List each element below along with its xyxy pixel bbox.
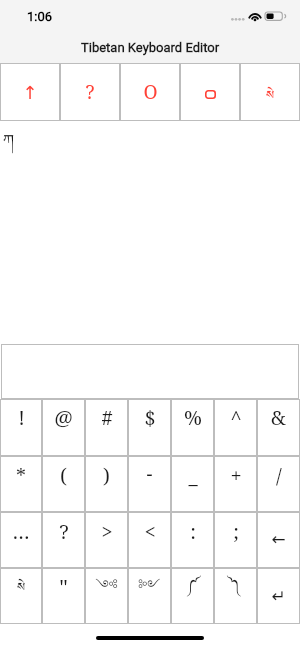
button[interactable]: / xyxy=(257,456,300,512)
button[interactable]: ↵ xyxy=(257,568,300,624)
button[interactable]: ) xyxy=(85,456,128,512)
button[interactable]: < xyxy=(128,512,171,568)
staticText: " xyxy=(59,565,68,621)
button[interactable]: : xyxy=(171,512,214,568)
staticText: ༻ xyxy=(138,569,161,608)
button[interactable]: ; xyxy=(214,512,257,568)
staticText: $ xyxy=(144,396,156,452)
staticText: * xyxy=(16,454,26,510)
staticText: ↑ xyxy=(22,82,38,103)
button[interactable]: ༺ xyxy=(85,568,128,624)
button[interactable]: # xyxy=(85,399,128,456)
button[interactable]: ༽ xyxy=(214,568,257,624)
button[interactable]: Space xyxy=(180,63,240,121)
button[interactable]: " xyxy=(42,568,85,624)
staticText: ? xyxy=(59,510,69,566)
staticText: ) xyxy=(103,454,110,510)
button[interactable]: - xyxy=(128,456,171,512)
staticText: / xyxy=(276,454,282,510)
staticText: ; xyxy=(233,510,239,566)
button[interactable]: Tibetan letter xyxy=(240,63,300,121)
button[interactable]: … xyxy=(0,512,42,568)
button[interactable]: ( xyxy=(42,456,85,512)
staticText: > xyxy=(101,510,113,566)
button[interactable]: @ xyxy=(42,399,85,456)
staticText: ? xyxy=(85,71,95,124)
staticText: ← xyxy=(271,529,286,549)
button[interactable]: ? xyxy=(42,512,85,568)
button[interactable]: * xyxy=(0,456,42,512)
staticText: ↵ xyxy=(271,586,286,606)
staticText: @ xyxy=(54,396,73,452)
staticText: ༼ xyxy=(186,575,199,601)
staticText: + xyxy=(230,454,242,510)
staticText: Tibetan Keyboard Editor xyxy=(81,40,220,55)
button[interactable]: Shift xyxy=(0,63,60,121)
staticText: ( xyxy=(60,454,67,510)
button[interactable]: % xyxy=(171,399,214,456)
button[interactable]: $ xyxy=(128,399,171,456)
staticText: སེ xyxy=(266,84,275,108)
staticText: སེ xyxy=(17,576,26,600)
button[interactable]: > xyxy=(85,512,128,568)
staticText: < xyxy=(144,510,156,566)
staticText: ༽ xyxy=(229,575,242,601)
button[interactable]: ༼ xyxy=(171,568,214,624)
button[interactable]: & xyxy=(257,399,300,456)
staticText: 1:06 xyxy=(27,9,53,24)
staticText: _ xyxy=(188,454,198,510)
staticText: ^ xyxy=(230,396,242,452)
button[interactable]: Zero xyxy=(120,63,180,121)
button[interactable]: Help xyxy=(60,63,120,121)
button[interactable]: ༻ xyxy=(128,568,171,624)
staticText: … xyxy=(12,510,30,566)
staticText: : xyxy=(190,510,196,566)
staticText: ཀ xyxy=(3,123,15,168)
staticText: & xyxy=(271,396,286,452)
staticText: O xyxy=(143,71,158,124)
button[interactable]: ^ xyxy=(214,399,257,456)
staticText: # xyxy=(101,396,113,452)
button[interactable]: ← xyxy=(257,512,300,568)
button[interactable]: + xyxy=(214,456,257,512)
staticText: ༺ xyxy=(95,569,118,608)
staticText: ! xyxy=(18,396,25,452)
button[interactable]: ! xyxy=(0,399,42,456)
staticText: - xyxy=(146,454,153,510)
staticText: % xyxy=(184,396,202,452)
button[interactable]: _ xyxy=(171,456,214,512)
button[interactable]: སེ xyxy=(0,568,42,624)
